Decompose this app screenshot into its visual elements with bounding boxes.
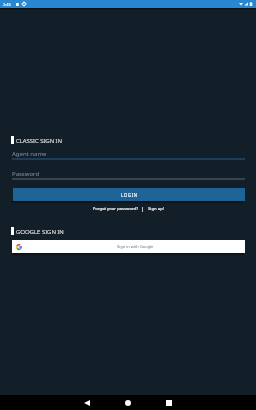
button[interactable]: Password <box>12 170 245 180</box>
staticText: LOGIN <box>121 192 138 198</box>
staticText: CLASSIC SIGN IN <box>16 136 62 144</box>
staticText: Sign in with Google <box>117 244 154 249</box>
button[interactable]: Back <box>84 400 90 406</box>
staticText: 2:45 <box>3 2 11 7</box>
button[interactable]: Agent name <box>12 150 245 160</box>
button[interactable]: Sign up! <box>148 206 164 212</box>
staticText: Password <box>12 170 40 178</box>
button[interactable]: Forgot your password? <box>93 206 138 212</box>
button[interactable]: Sign in with Google <box>12 240 245 253</box>
staticText: Agent name <box>12 150 47 158</box>
staticText: GOOGLE SIGN IN <box>16 227 64 235</box>
button[interactable]: Home <box>125 400 131 406</box>
button[interactable]: LOGIN <box>13 188 245 201</box>
